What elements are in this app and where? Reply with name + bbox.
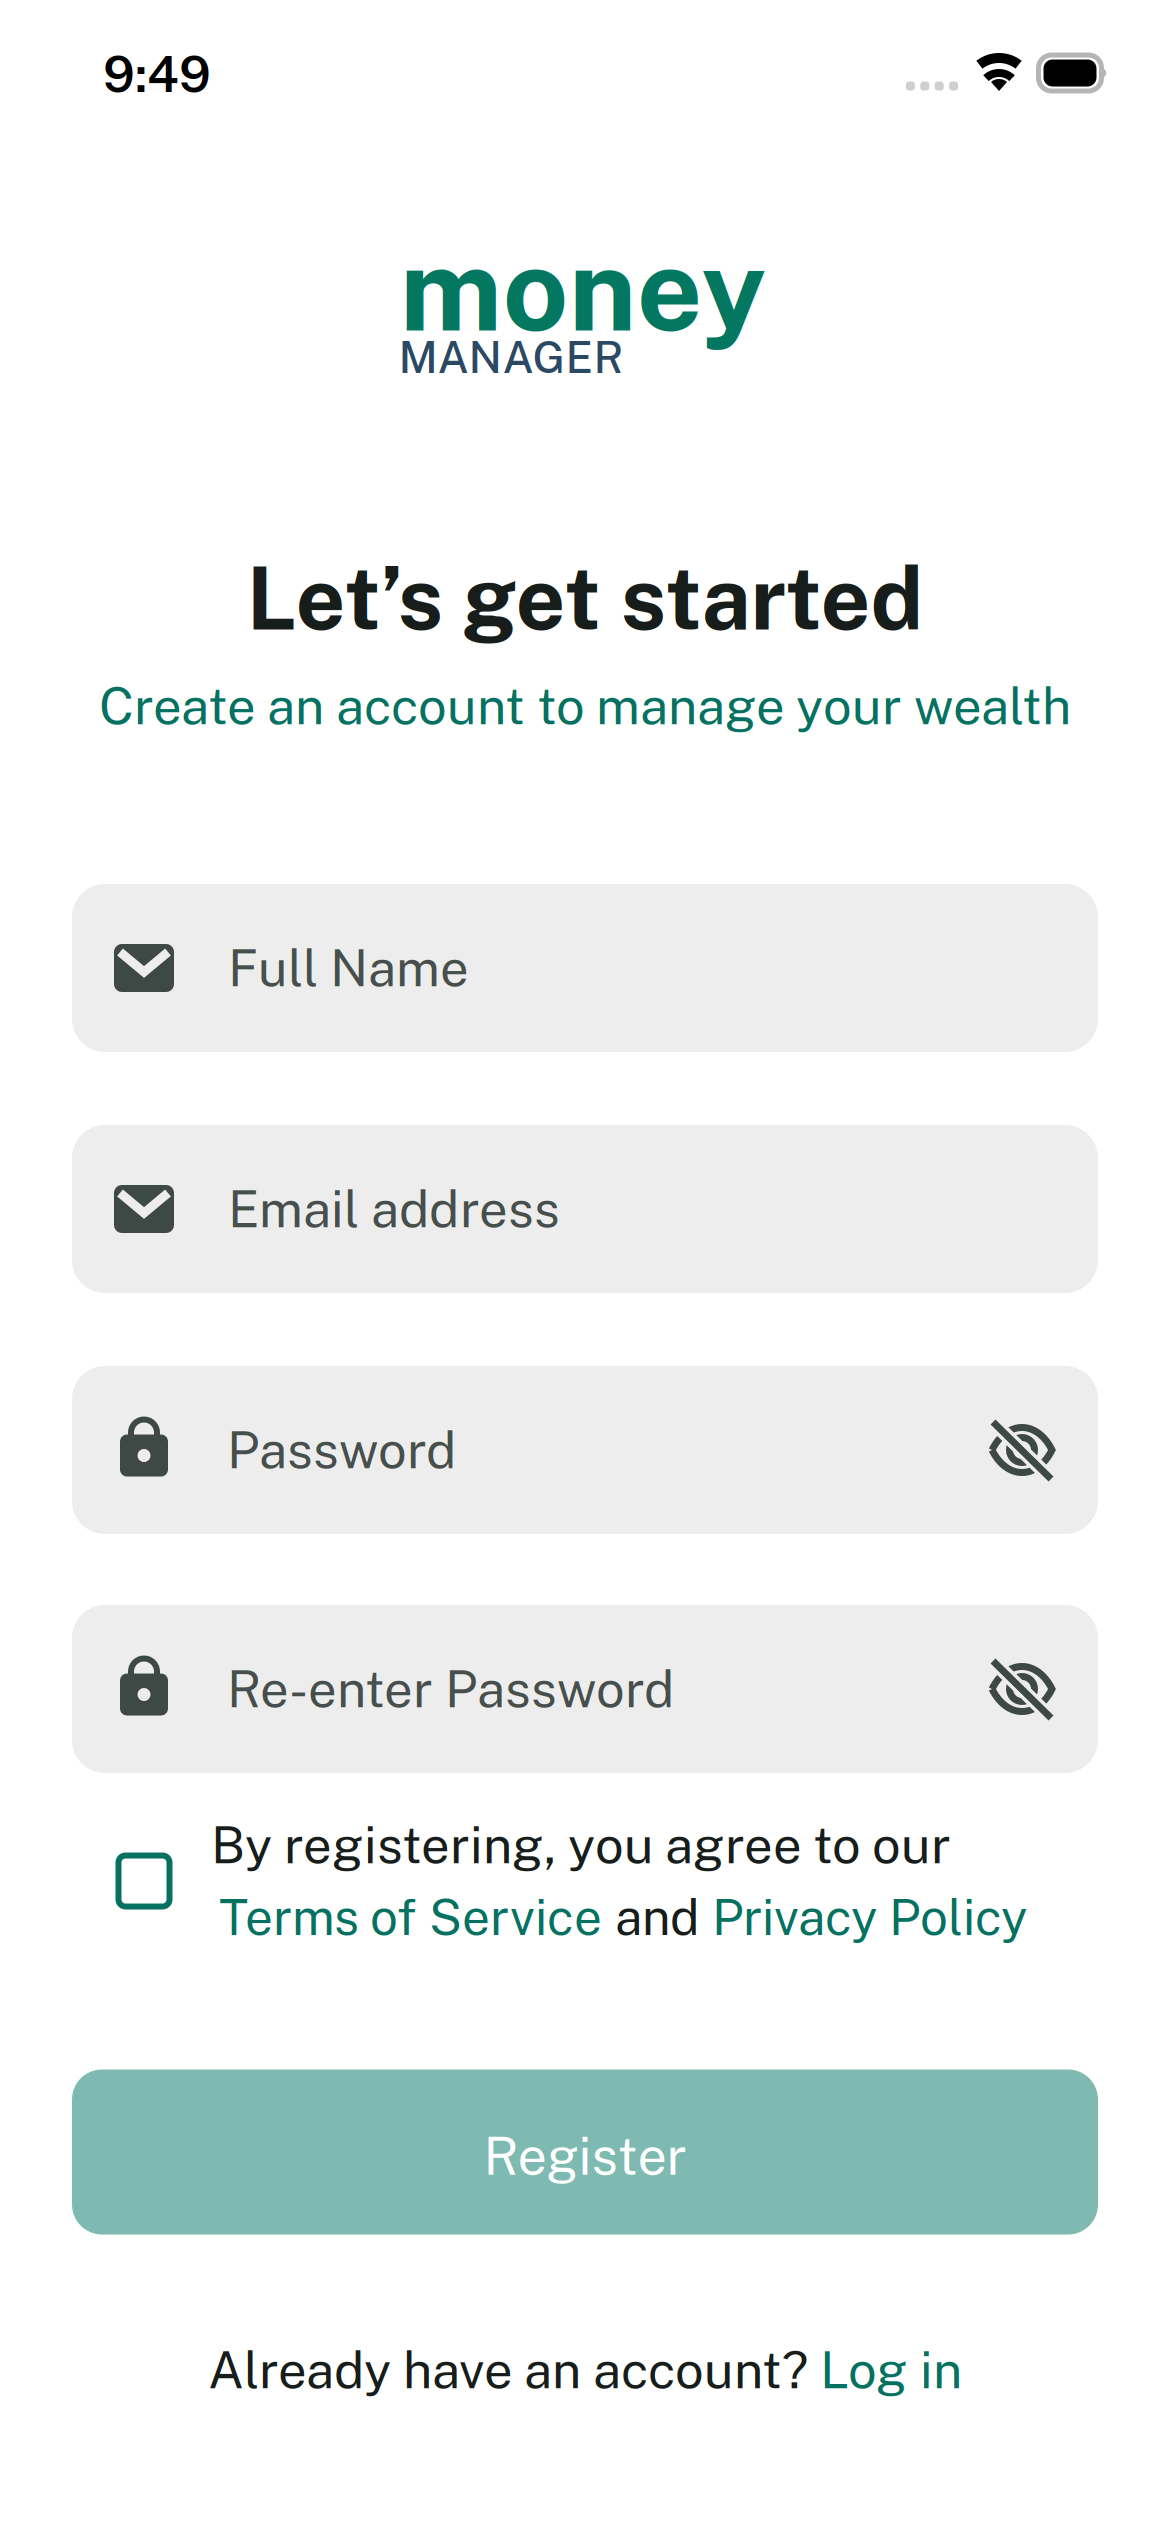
button[interactable]: Terms of Service [219,1888,602,1946]
button[interactable]: Email address [72,1125,1098,1293]
staticText: Re-enter Password [227,1659,674,1719]
staticText: Let’s get started [246,547,923,649]
staticText: money [399,222,766,356]
staticText: Already have an account? [208,2340,820,2400]
staticText: and [615,1888,699,1946]
button[interactable]: Privacy Policy [712,1888,1027,1946]
button[interactable]: Full Name [72,884,1098,1052]
staticText: Log in [820,2340,962,2400]
button[interactable]: Log in [820,2340,962,2400]
staticText: Privacy Policy [712,1888,1027,1946]
staticText: By registering, you agree to our [211,1815,951,1875]
staticText: Terms of Service [219,1888,602,1946]
staticText: 9:49 [103,45,211,103]
staticText: Register [483,2125,686,2186]
staticText: Create an account to manage your wealth [99,676,1071,736]
button[interactable]: Agree to terms [118,1855,169,1906]
staticText: Full Name [228,938,469,998]
button[interactable]: Re-enter Password [72,1605,1098,1773]
button[interactable]: Register [72,2069,1098,2234]
staticText: Password [227,1420,456,1480]
button[interactable]: Password [72,1366,1098,1534]
staticText: MANAGER [398,331,623,383]
staticText: Email address [228,1179,560,1239]
